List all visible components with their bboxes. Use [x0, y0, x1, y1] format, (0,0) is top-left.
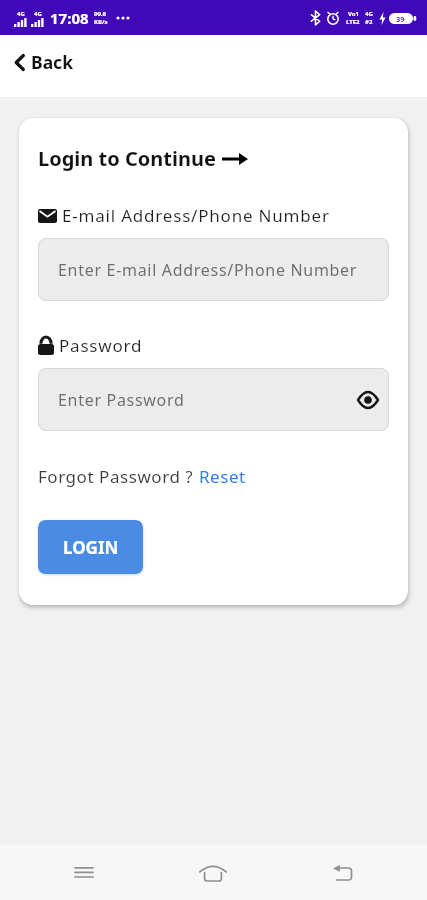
staticText: Back: [31, 50, 73, 74]
staticText: Login to Continue: [38, 145, 216, 172]
staticText: Enter Password: [58, 389, 185, 411]
button[interactable]: [189, 845, 237, 900]
staticText: LTE2: [346, 18, 360, 26]
button[interactable]: [60, 845, 108, 900]
staticText: E-mail Address/Phone Number: [62, 204, 330, 227]
staticText: Password: [59, 334, 143, 357]
staticText: 39: [396, 14, 405, 24]
button[interactable]: Forgot Password ?: [38, 465, 246, 488]
button[interactable]: Enter E-mail Address/Phone Number: [38, 238, 389, 301]
button[interactable]: Back: [14, 50, 73, 74]
staticText: 4G: [17, 10, 25, 18]
staticText: 4G: [365, 10, 373, 18]
staticText: LOGIN: [63, 536, 119, 559]
staticText: 4G: [34, 10, 42, 18]
button[interactable]: Enter Password: [38, 368, 389, 431]
staticText: 17:08: [50, 8, 89, 28]
staticText: Reset: [199, 465, 246, 488]
staticText: #2: [365, 18, 373, 26]
staticText: Forgot Password ?: [38, 465, 199, 488]
staticText: Enter E-mail Address/Phone Number: [58, 259, 358, 281]
button[interactable]: [319, 845, 367, 900]
staticText: KB/s: [94, 18, 108, 26]
staticText: Vo1: [348, 10, 359, 18]
button[interactable]: LOGIN: [38, 520, 143, 574]
staticText: 99.8: [94, 10, 106, 18]
